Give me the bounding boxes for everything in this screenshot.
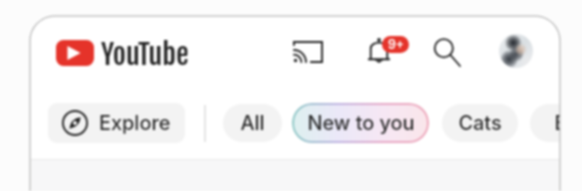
button[interactable]: B [530, 104, 560, 142]
button[interactable]: YouTube home [56, 38, 189, 68]
button[interactable]: New to you [292, 103, 429, 143]
staticText: New to you [307, 111, 415, 135]
button[interactable]: Notifications [357, 29, 401, 73]
button[interactable]: All [223, 104, 282, 142]
staticText: B [554, 111, 560, 135]
staticText: Cats [458, 111, 502, 135]
staticText: YouTube [101, 36, 189, 66]
button[interactable]: Cats [442, 104, 518, 142]
staticText: 9+ [388, 37, 404, 52]
button[interactable]: Search [425, 30, 469, 74]
button[interactable]: Cast [285, 30, 330, 74]
button[interactable]: Account [499, 34, 533, 68]
staticText: Explore [99, 111, 171, 135]
staticText: All [240, 111, 265, 135]
button[interactable]: Explore [48, 103, 185, 143]
